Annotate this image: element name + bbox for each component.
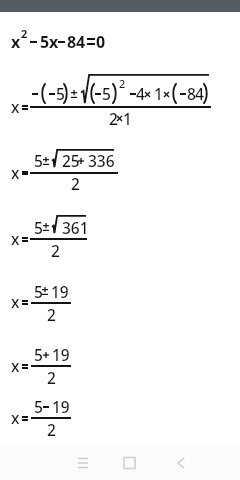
staticText: 5 [34,344,43,365]
staticText: 336 [88,150,115,171]
staticText: x [49,31,59,53]
staticText: x [11,228,20,249]
staticText: 5 [34,281,43,302]
staticText: x [11,407,20,428]
staticText: 5 [34,150,43,171]
staticText: 5 [40,31,50,53]
staticText: 4 [136,83,145,104]
staticText: 2 [47,367,56,388]
staticText: x [11,96,20,117]
button[interactable]: Back [169,452,193,472]
staticText: 8 [67,31,77,53]
staticText: 5 [34,217,43,238]
staticText: 5 [56,83,65,104]
staticText: x [11,291,20,312]
staticText: x [11,31,21,53]
button[interactable]: Home [118,452,142,472]
staticText: 2 [47,419,56,440]
staticText: 1 [123,108,132,129]
staticText: 0 [96,31,106,53]
staticText: 361 [62,217,89,238]
staticText: 4 [195,83,204,104]
staticText: 1 [154,83,163,104]
staticText: 2 [109,108,118,129]
staticText: x [11,162,20,183]
staticText: 5 [102,83,111,104]
staticText: 2 [71,173,80,194]
staticText: 8 [187,83,196,104]
staticText: 19 [52,344,70,365]
button[interactable]: Recent apps [71,452,95,472]
staticText: 2 [119,76,126,91]
staticText: 19 [52,396,70,417]
staticText: 2 [51,240,60,261]
staticText: 2 [21,26,28,41]
staticText: 4 [76,31,86,53]
staticText: 25 [62,150,80,171]
staticText: 5 [34,396,43,417]
staticText: 19 [51,281,69,302]
staticText: x [11,355,20,376]
staticText: 2 [47,304,56,325]
